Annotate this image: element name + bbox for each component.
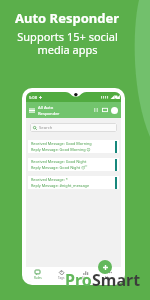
staticText: Received Message: Good Night bbox=[31, 159, 87, 164]
staticText: Received Message: * bbox=[31, 177, 68, 182]
button[interactable]: Received Message: Good Night bbox=[28, 158, 119, 171]
staticText: Pro bbox=[65, 269, 92, 291]
button[interactable]: Menu bbox=[29, 107, 35, 113]
staticText: Reply Message: Good Night 😴 bbox=[31, 165, 88, 170]
staticText: 5:08 bbox=[29, 95, 37, 100]
staticText: Auto Responder bbox=[15, 9, 119, 27]
button[interactable]: Filter bbox=[93, 107, 99, 113]
staticText: Supports 15+ social media apps bbox=[17, 29, 118, 57]
staticText: Reply Message: #night_message bbox=[31, 183, 90, 188]
staticText: Stats bbox=[82, 276, 89, 280]
button[interactable]: Search bbox=[33, 123, 114, 132]
button[interactable]: Received Message: Good Morning bbox=[28, 140, 119, 153]
staticText: Smart bbox=[92, 269, 141, 291]
button[interactable]: Tags bbox=[49, 267, 73, 282]
button[interactable]: More bbox=[97, 267, 121, 282]
staticText: More bbox=[105, 276, 113, 280]
staticText: All Auto Responder bbox=[38, 105, 60, 116]
staticText: Reply Message: Good Morning 😊 bbox=[31, 147, 91, 152]
button[interactable]: Rules bbox=[26, 267, 49, 282]
button[interactable]: Stats bbox=[73, 267, 97, 282]
button[interactable]: Received Message: * bbox=[28, 176, 119, 189]
staticText: Rules bbox=[34, 276, 42, 280]
staticText: Search bbox=[39, 125, 53, 131]
staticText: Tags bbox=[58, 276, 65, 280]
button[interactable]: Mail bbox=[102, 107, 108, 113]
staticText: Received Message: Good Morning bbox=[31, 141, 92, 146]
button[interactable]: Profile bbox=[111, 107, 118, 114]
